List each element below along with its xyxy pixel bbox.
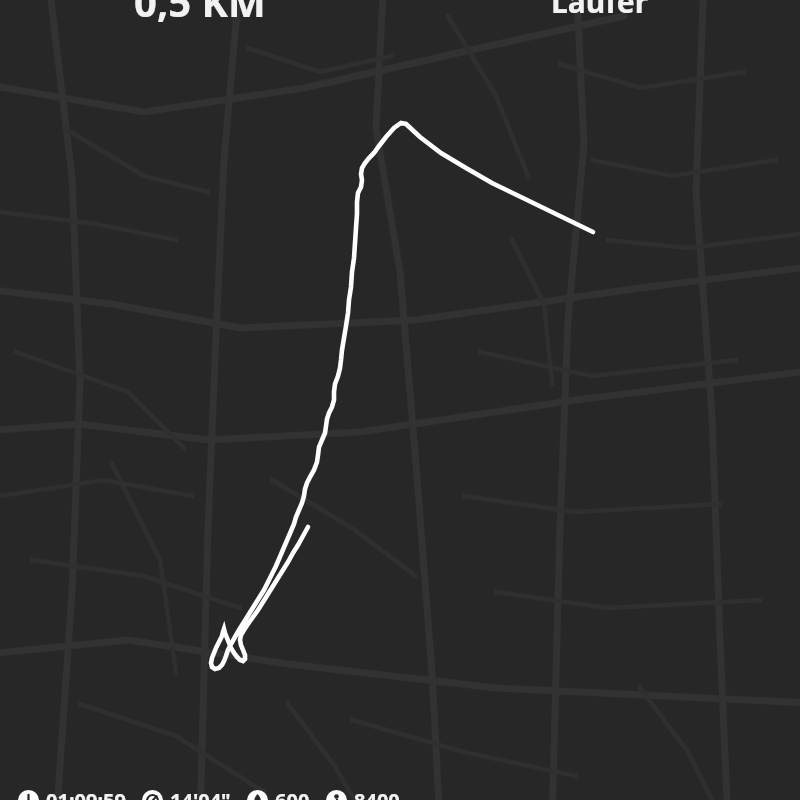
- staticText: 01:09:59: [46, 787, 126, 800]
- other: Calories: [247, 790, 268, 800]
- button[interactable]: Calories: [247, 787, 310, 800]
- other: Steps: [326, 790, 347, 800]
- other: Pace: [142, 790, 163, 800]
- staticText: 8400: [354, 787, 400, 800]
- staticText: 14'04": [170, 787, 231, 800]
- staticText: 0,5 KM: [134, 0, 266, 28]
- button[interactable]: Steps: [326, 787, 400, 800]
- button[interactable]: Duration: [18, 787, 126, 800]
- staticText: Läufer: [551, 0, 649, 22]
- staticText: 600: [275, 787, 310, 800]
- other: Duration: [18, 790, 39, 800]
- button[interactable]: Pace: [142, 787, 231, 800]
